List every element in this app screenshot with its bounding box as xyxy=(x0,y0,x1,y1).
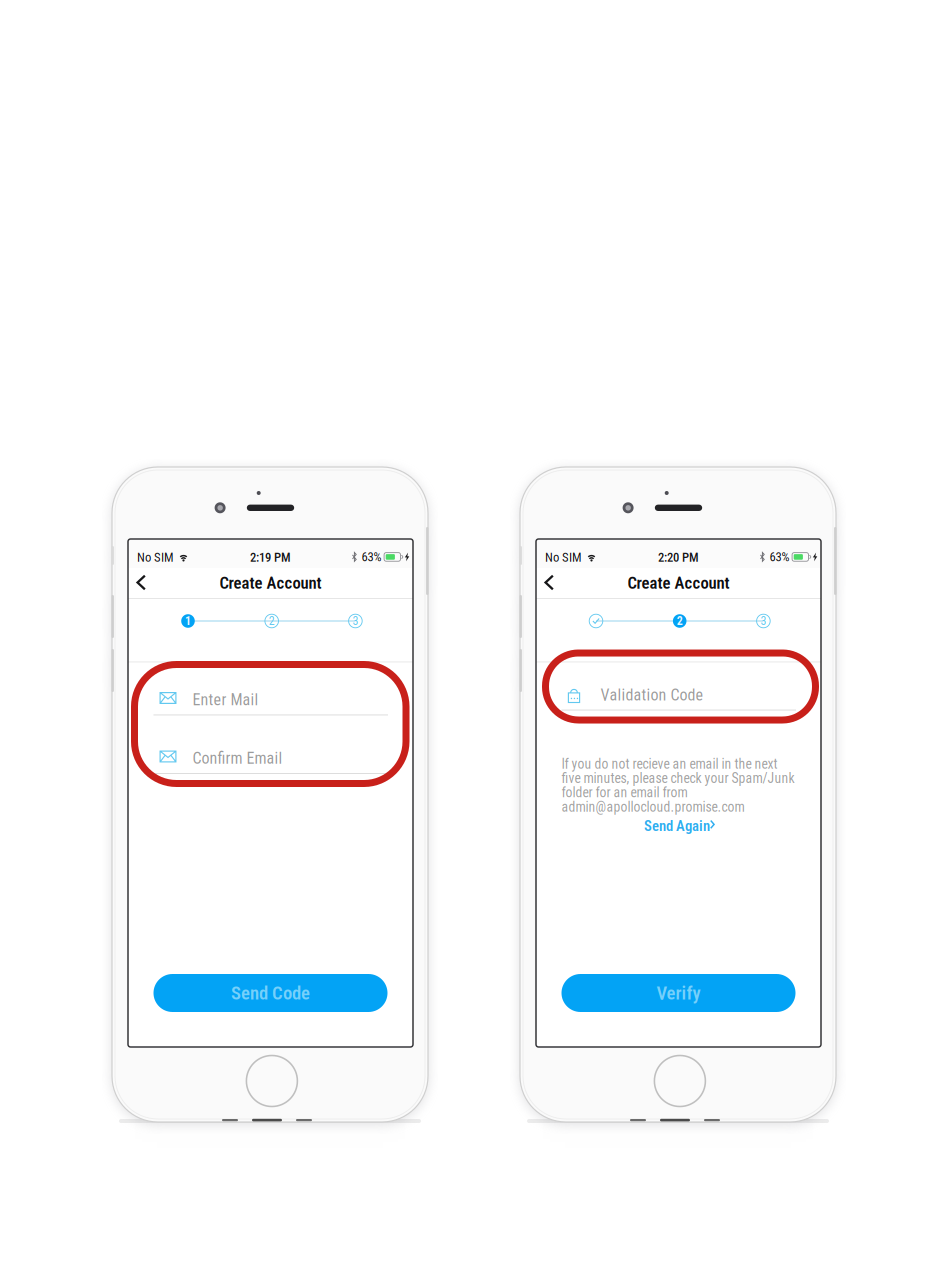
staticText: folder for an email from xyxy=(561,785,687,801)
staticText: Confirm Email xyxy=(192,749,282,768)
staticText: 63% xyxy=(362,549,382,564)
button[interactable]: Verify xyxy=(561,974,795,1012)
staticText: 2 xyxy=(269,614,275,628)
button[interactable]: Back xyxy=(536,568,568,598)
staticText: admin@apollocloud.promise.com xyxy=(561,799,744,815)
staticText: Send Again xyxy=(644,817,710,835)
staticText: 63% xyxy=(770,549,790,564)
staticText: Send Code xyxy=(231,982,310,1004)
staticText: If you do not recieve an email in the ne… xyxy=(561,756,777,772)
staticText: 3 xyxy=(352,614,358,628)
staticText: Enter Mail xyxy=(192,690,258,709)
staticText: Create Account xyxy=(219,573,321,593)
staticText: 2:20 PM xyxy=(658,550,699,565)
button[interactable]: Confirm Email xyxy=(128,744,413,780)
staticText: 1 xyxy=(185,614,191,628)
staticText: 3 xyxy=(760,614,766,628)
button[interactable]: Send Again xyxy=(644,819,722,833)
staticText: 2:19 PM xyxy=(250,550,291,565)
staticText: 2 xyxy=(677,614,683,628)
staticText: five minutes, please check your Spam/Jun… xyxy=(561,770,794,786)
staticText: Validation Code xyxy=(600,686,703,704)
staticText: No SIM xyxy=(137,550,174,565)
button[interactable]: Back xyxy=(128,568,160,598)
staticText: No SIM xyxy=(545,550,582,565)
button[interactable]: Validation Code xyxy=(536,681,821,717)
button[interactable]: Enter Mail xyxy=(128,685,413,721)
staticText: Create Account xyxy=(627,573,729,593)
button[interactable]: Send Code xyxy=(153,974,387,1012)
staticText: Verify xyxy=(656,982,700,1004)
